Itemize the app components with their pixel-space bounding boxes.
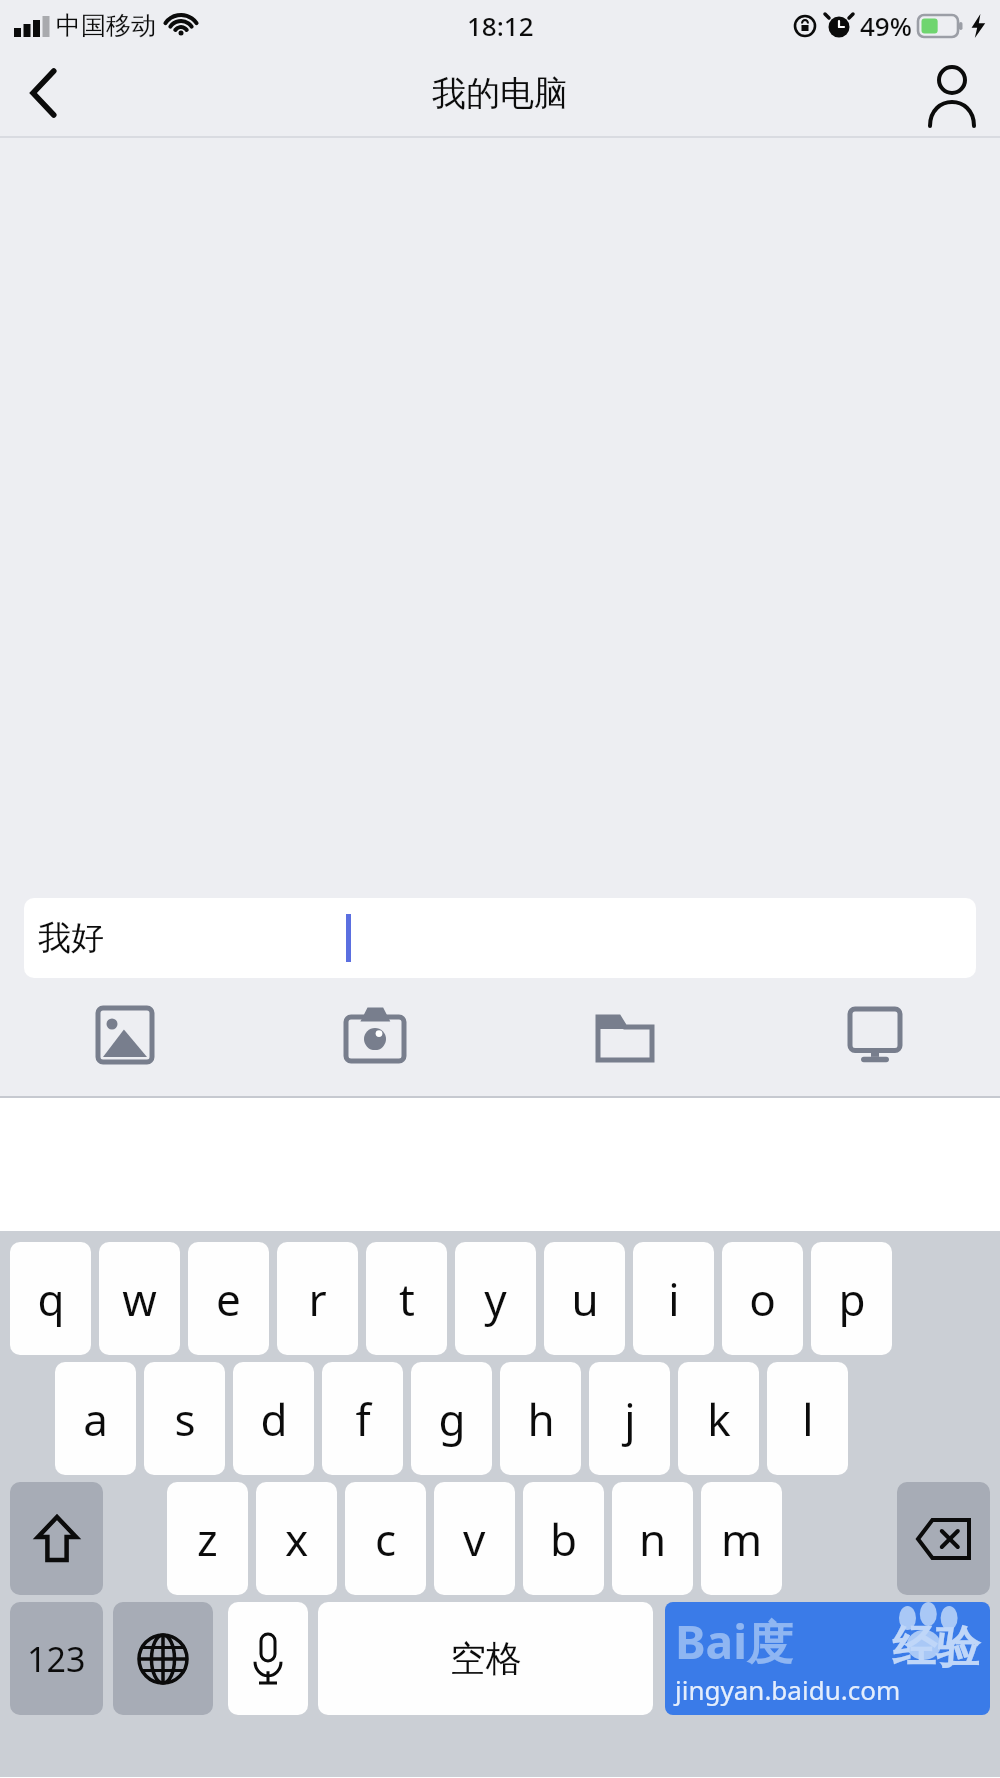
staticText: u (571, 1269, 599, 1329)
button[interactable]: p (811, 1242, 892, 1355)
button[interactable]: Screen (750, 996, 1000, 1074)
button[interactable]: 123 (10, 1602, 103, 1715)
staticText: b (550, 1509, 578, 1569)
button[interactable]: Back (0, 50, 90, 136)
button[interactable]: a (55, 1362, 136, 1475)
staticText: jingyan.baidu.com (675, 1672, 901, 1707)
staticText: i (668, 1269, 680, 1329)
button[interactable]: Bai度 (665, 1602, 990, 1715)
button[interactable]: w (99, 1242, 180, 1355)
button[interactable]: u (544, 1242, 625, 1355)
button[interactable]: Files (500, 996, 750, 1074)
staticText: h (527, 1389, 555, 1449)
staticText: 我的电脑 (432, 72, 568, 115)
button[interactable]: Shift (10, 1482, 103, 1595)
button[interactable]: x (256, 1482, 337, 1595)
button[interactable]: Camera (250, 996, 500, 1074)
staticText: d (260, 1389, 288, 1449)
staticText: t (399, 1269, 415, 1329)
staticText: c (375, 1509, 397, 1569)
button[interactable]: m (701, 1482, 782, 1595)
button[interactable]: Switch language (113, 1602, 213, 1715)
button[interactable]: j (589, 1362, 670, 1475)
button[interactable]: s (144, 1362, 225, 1475)
staticText: g (438, 1389, 466, 1449)
staticText: j (624, 1389, 636, 1449)
button[interactable]: h (500, 1362, 581, 1475)
button[interactable]: q (10, 1242, 91, 1355)
button[interactable]: Profile (904, 50, 1000, 136)
staticText: f (355, 1389, 371, 1449)
staticText: l (802, 1389, 814, 1449)
staticText: m (721, 1509, 763, 1569)
button[interactable]: k (678, 1362, 759, 1475)
staticText: n (639, 1509, 667, 1569)
staticText: w (122, 1269, 157, 1329)
button[interactable]: n (612, 1482, 693, 1595)
staticText: r (308, 1269, 327, 1329)
button[interactable]: e (188, 1242, 269, 1355)
staticText: 49% (860, 8, 912, 43)
staticText: v (463, 1509, 486, 1569)
staticText: 空格 (450, 1636, 522, 1681)
button[interactable]: Voice input (228, 1602, 308, 1715)
button[interactable]: d (233, 1362, 314, 1475)
button[interactable]: o (722, 1242, 803, 1355)
staticText: z (197, 1509, 218, 1569)
staticText: 经验 (892, 1620, 980, 1675)
staticText: o (749, 1269, 776, 1329)
staticText: s (174, 1389, 196, 1449)
staticText: p (838, 1269, 866, 1329)
button[interactable]: b (523, 1482, 604, 1595)
button[interactable]: y (455, 1242, 536, 1355)
button[interactable]: t (366, 1242, 447, 1355)
button[interactable]: 空格 (318, 1602, 653, 1715)
button[interactable]: c (345, 1482, 426, 1595)
staticText: x (285, 1509, 309, 1569)
staticText: e (216, 1269, 241, 1329)
button[interactable]: Backspace (897, 1482, 990, 1595)
button[interactable]: i (633, 1242, 714, 1355)
button[interactable]: g (411, 1362, 492, 1475)
staticText: 123 (27, 1636, 86, 1682)
button[interactable]: z (167, 1482, 248, 1595)
staticText: Bai度 (675, 1610, 793, 1673)
button[interactable]: Photos (0, 996, 250, 1074)
staticText: y (484, 1269, 507, 1329)
staticText: q (37, 1269, 65, 1329)
staticText: a (83, 1389, 108, 1449)
button[interactable]: r (277, 1242, 358, 1355)
button[interactable]: f (322, 1362, 403, 1475)
button[interactable]: 我好 (24, 898, 976, 978)
button[interactable]: l (767, 1362, 848, 1475)
staticText: 中国移动 (56, 10, 156, 41)
staticText: k (707, 1389, 731, 1449)
staticText: 我好 (38, 917, 104, 959)
staticText: 18:12 (467, 8, 534, 43)
button[interactable]: v (434, 1482, 515, 1595)
